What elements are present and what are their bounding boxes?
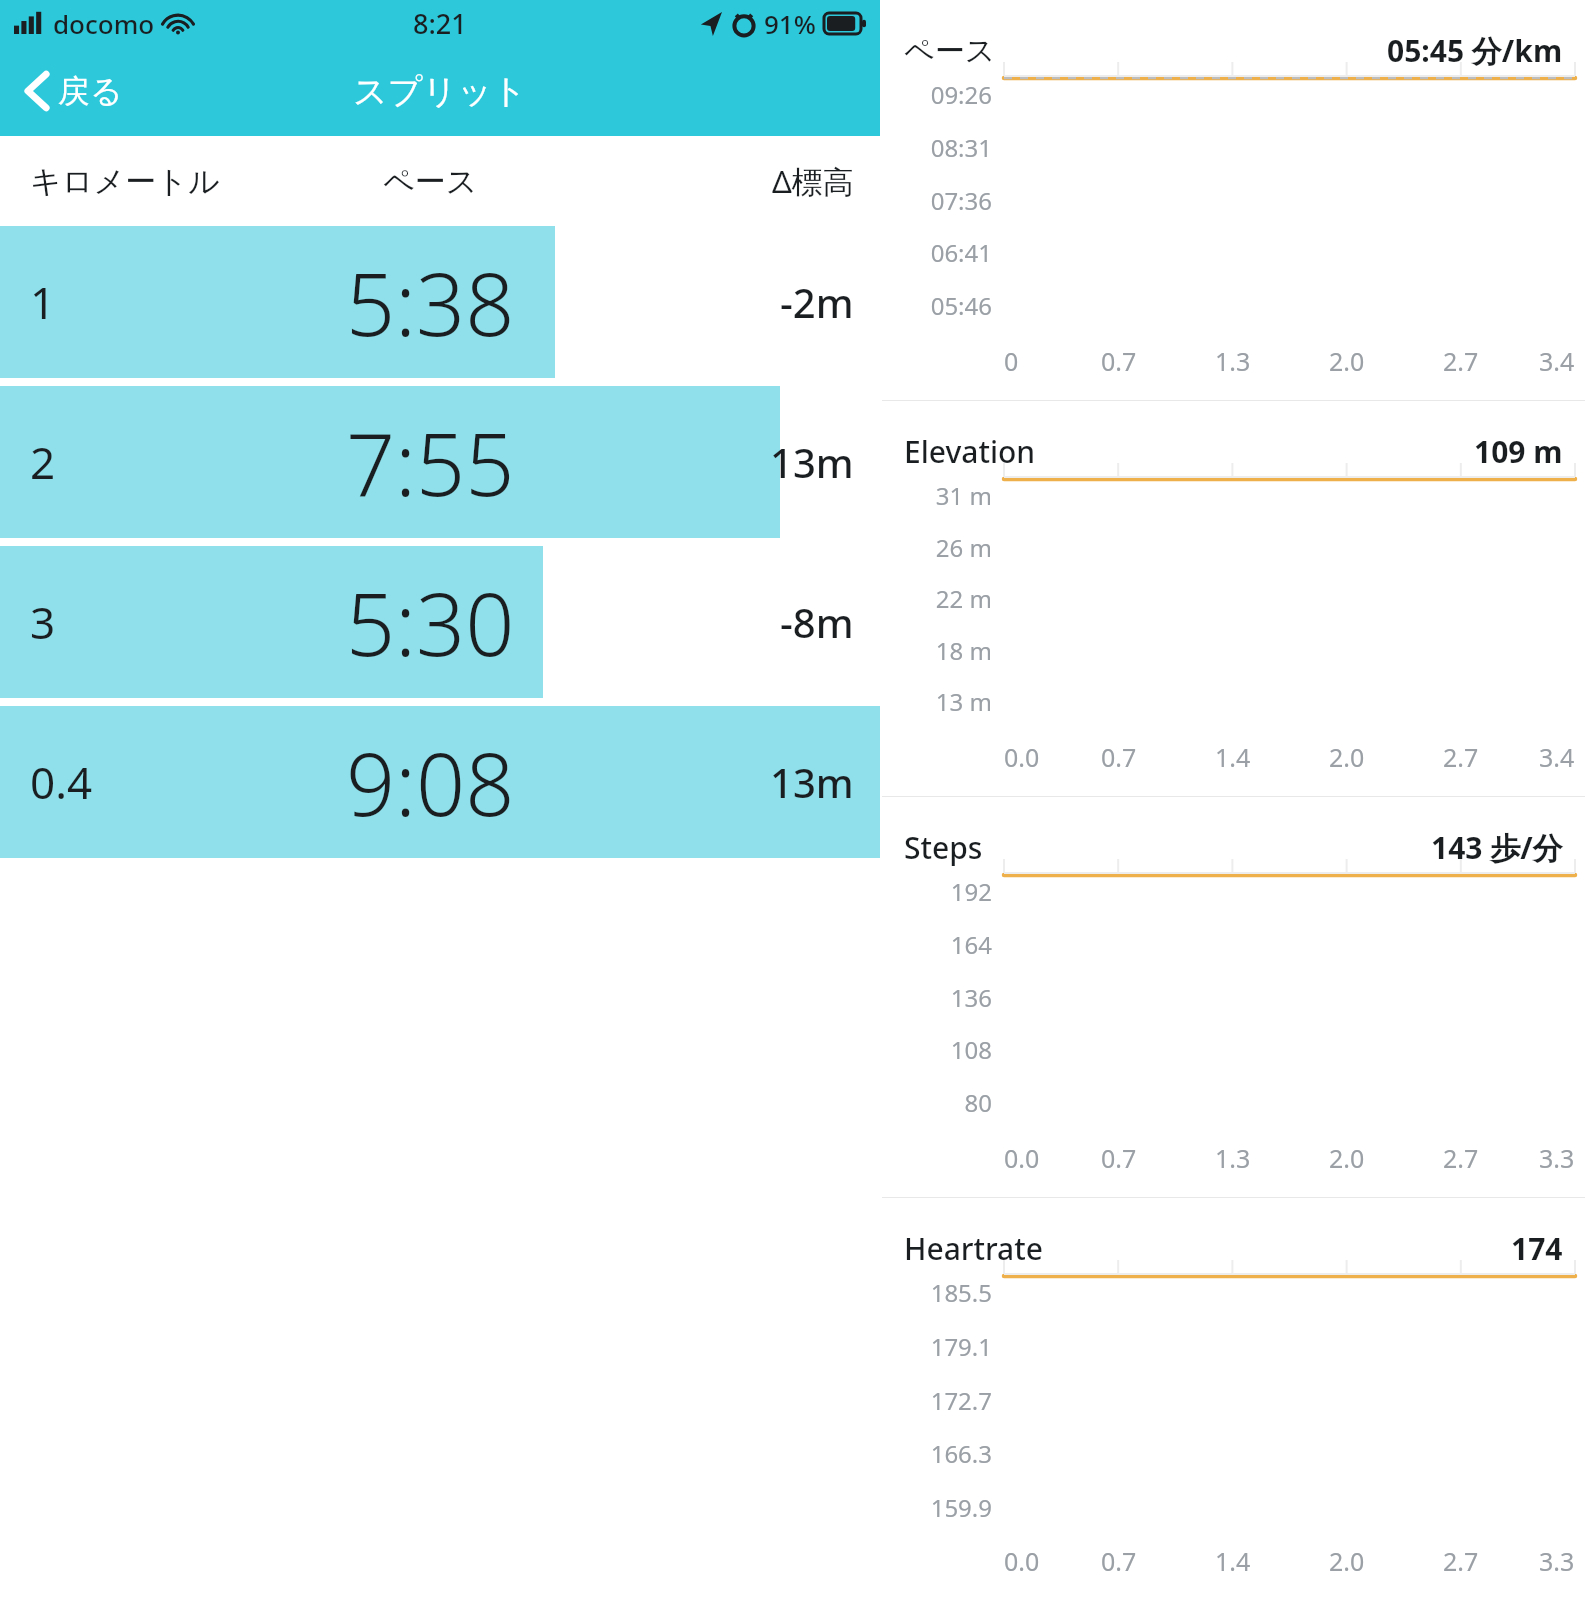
staticText: 1 (30, 272, 56, 332)
staticText: 166.3 (900, 1437, 992, 1470)
staticText: 5:30 (346, 564, 515, 681)
staticText: 13 m (900, 685, 992, 718)
staticText: 80 (900, 1086, 992, 1119)
staticText: 1.4 (1215, 1544, 1251, 1578)
staticText: 1.3 (1215, 1141, 1251, 1175)
staticText: 18 m (900, 634, 992, 667)
staticText: ペース (904, 32, 996, 70)
staticText: 0.7 (1101, 1544, 1137, 1578)
staticText: -8m (780, 595, 854, 649)
staticText: 136 (900, 981, 992, 1014)
staticText: 2.0 (1329, 1544, 1365, 1578)
staticText: Δ標高 (772, 160, 854, 202)
staticText: 13m (770, 755, 854, 809)
button[interactable] (0, 546, 543, 698)
staticText: キロメートル (30, 162, 220, 201)
staticText: 1.3 (1215, 344, 1251, 378)
staticText: 109 m (1474, 431, 1563, 472)
staticText: 91% (764, 6, 816, 41)
staticText: 3.4 (1539, 740, 1575, 774)
staticText: スプリット (353, 70, 527, 113)
staticText: 0 (1004, 344, 1019, 378)
staticText: 7:55 (346, 404, 515, 521)
staticText: 0.7 (1101, 344, 1137, 378)
staticText: -2m (780, 275, 854, 329)
staticText: 5:38 (346, 244, 515, 361)
staticText: docomo (53, 6, 155, 41)
staticText: 2.7 (1443, 1141, 1479, 1175)
staticText: 1.4 (1215, 740, 1251, 774)
staticText: 0.0 (1004, 740, 1040, 774)
staticText: 172.7 (900, 1384, 992, 1417)
staticText: 31 m (900, 479, 992, 512)
staticText: 0.0 (1004, 1141, 1040, 1175)
staticText: 0.4 (30, 752, 93, 812)
staticText: 09:26 (900, 78, 992, 111)
staticText: 174 (1511, 1228, 1563, 1269)
staticText: 05:46 (900, 289, 992, 322)
staticText: 3.3 (1539, 1141, 1575, 1175)
staticText: 2.0 (1329, 344, 1365, 378)
button[interactable]: Heartrate (882, 1198, 1585, 1600)
staticText: 3.3 (1539, 1544, 1575, 1578)
staticText: 0.0 (1004, 1544, 1040, 1578)
staticText: 0.7 (1101, 1141, 1137, 1175)
staticText: 164 (900, 928, 992, 961)
button[interactable]: ペース (882, 0, 1585, 400)
staticText: Elevation (904, 431, 1036, 472)
staticText: ペース (383, 162, 478, 201)
staticText: 06:41 (900, 236, 992, 269)
staticText: 2.0 (1329, 1141, 1365, 1175)
staticText: 2 (30, 432, 56, 492)
staticText: 3 (30, 592, 56, 652)
staticText: 2.7 (1443, 344, 1479, 378)
button[interactable] (0, 706, 880, 858)
staticText: 179.1 (900, 1330, 992, 1363)
staticText: 07:36 (900, 184, 992, 217)
staticText: 08:31 (900, 131, 992, 164)
staticText: 159.9 (900, 1491, 992, 1524)
staticText: 192 (900, 875, 992, 908)
staticText: 戻る (58, 71, 123, 111)
staticText: 2.7 (1443, 1544, 1479, 1578)
staticText: 8:21 (413, 5, 467, 42)
button[interactable] (0, 226, 555, 378)
staticText: 143 歩/分 (1431, 827, 1563, 868)
staticText: 108 (900, 1033, 992, 1066)
button[interactable]: Steps (882, 797, 1585, 1197)
staticText: 3.4 (1539, 344, 1575, 378)
staticText: 0.7 (1101, 740, 1137, 774)
staticText: Steps (904, 827, 983, 868)
staticText: 05:45 分/km (1387, 30, 1563, 71)
button[interactable]: Elevation (882, 401, 1585, 796)
staticText: 2.7 (1443, 740, 1479, 774)
staticText: 185.5 (900, 1276, 992, 1309)
staticText: 2.0 (1329, 740, 1365, 774)
staticText: 9:08 (346, 724, 515, 841)
button[interactable] (0, 386, 780, 538)
staticText: 13m (770, 435, 854, 489)
button[interactable]: 戻る (18, 64, 129, 118)
staticText: 22 m (900, 582, 992, 615)
staticText: 26 m (900, 531, 992, 564)
staticText: Heartrate (904, 1228, 1043, 1269)
